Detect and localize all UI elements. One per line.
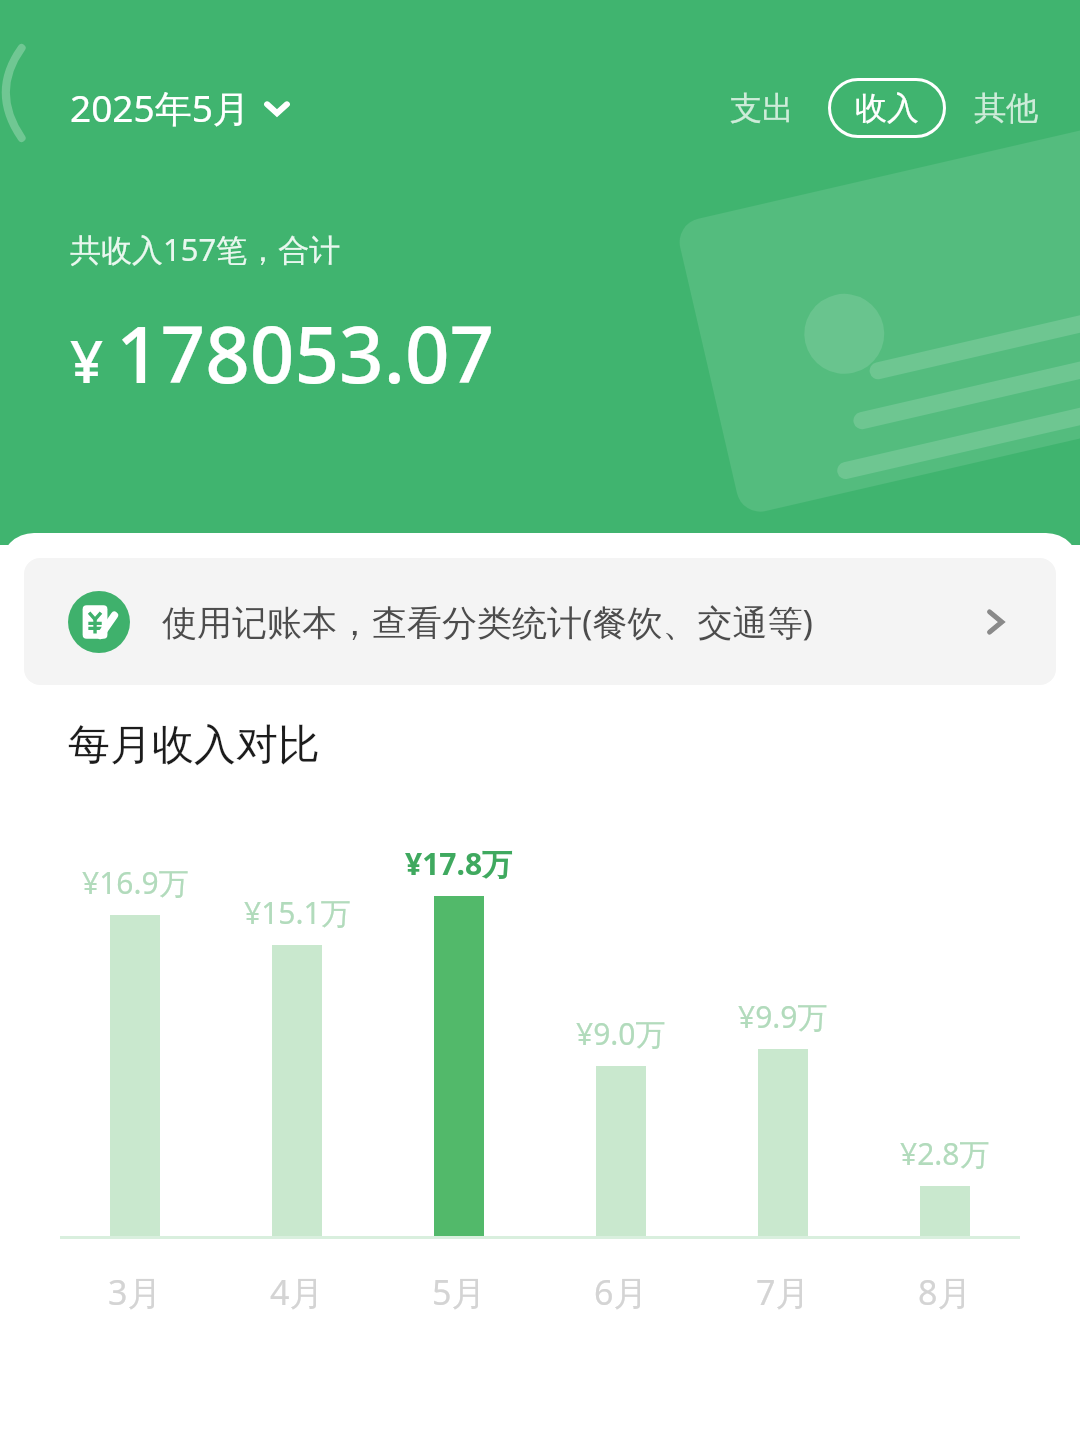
staticText: 其他 bbox=[974, 88, 1038, 128]
button[interactable]: 收入 bbox=[828, 78, 946, 138]
button[interactable]: 其他 bbox=[966, 74, 1046, 142]
staticText: ¥9.0万 bbox=[576, 1013, 666, 1054]
staticText: 178053.07 bbox=[116, 300, 495, 406]
staticText: ¥17.8万 bbox=[405, 843, 513, 884]
staticText: 每月收入对比 bbox=[68, 719, 320, 772]
staticText: 使用记账本，查看分类统计(餐饮、交通等) bbox=[162, 598, 813, 646]
staticText: ¥ bbox=[70, 321, 104, 400]
other: 查看分类统计 bbox=[978, 605, 1012, 639]
staticText: 6月 bbox=[594, 1269, 648, 1315]
staticText: 共收入157笔，合计 bbox=[70, 228, 341, 270]
staticText: ¥2.8万 bbox=[900, 1133, 990, 1174]
staticText: ¥16.9万 bbox=[82, 862, 189, 903]
staticText: 7月 bbox=[756, 1269, 810, 1315]
staticText: ¥9.9万 bbox=[738, 996, 828, 1037]
button[interactable]: 使用记账本，查看分类统计(餐饮、交通等) bbox=[24, 558, 1056, 685]
staticText: 5月 bbox=[432, 1269, 486, 1315]
button[interactable]: 2025年5月 bbox=[54, 72, 306, 143]
staticText: ¥15.1万 bbox=[244, 892, 351, 933]
staticText: 3月 bbox=[108, 1269, 162, 1315]
staticText: 8月 bbox=[918, 1269, 972, 1315]
staticText: 支出 bbox=[730, 88, 794, 128]
staticText: 收入 bbox=[855, 88, 919, 128]
staticText: 4月 bbox=[270, 1269, 324, 1315]
staticText: 2025年5月 bbox=[70, 82, 250, 133]
button[interactable]: 支出 bbox=[716, 74, 808, 142]
